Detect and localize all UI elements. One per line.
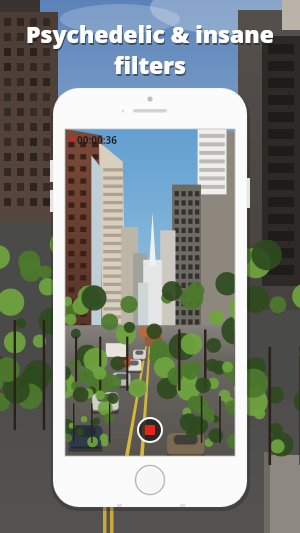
staticText: Psychedelic & insane filters [4,18,296,80]
staticText: 00:00:36 [77,133,117,147]
button[interactable]: Recording timer 00:00:36 [70,133,128,147]
staticText: Psychedelic & insane filters [5,20,297,82]
button[interactable]: Stop recording [137,417,163,443]
